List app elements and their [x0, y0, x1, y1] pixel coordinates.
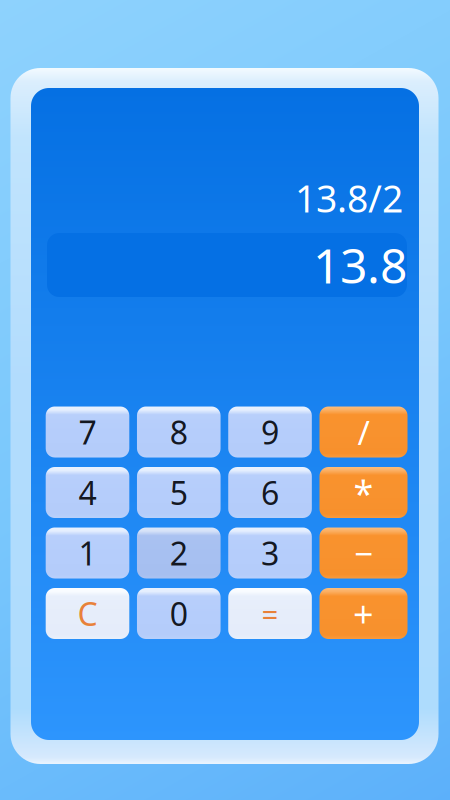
staticText: 1: [78, 532, 96, 574]
staticText: C: [77, 592, 97, 635]
staticText: 0: [170, 592, 188, 635]
button[interactable]: 9: [228, 406, 312, 457]
button[interactable]: C: [46, 588, 129, 639]
staticText: +: [353, 590, 374, 637]
staticText: −: [354, 531, 373, 575]
staticText: 8: [170, 411, 188, 453]
button[interactable]: *: [319, 467, 407, 518]
button[interactable]: −: [319, 527, 407, 578]
staticText: *: [353, 469, 373, 516]
button[interactable]: +: [319, 588, 407, 639]
staticText: 2: [170, 532, 188, 574]
staticText: 3: [261, 532, 279, 574]
staticText: 7: [78, 411, 96, 453]
button[interactable]: 8: [137, 406, 221, 457]
button[interactable]: 5: [137, 467, 221, 518]
staticText: 6: [261, 471, 279, 514]
button[interactable]: 1: [46, 527, 129, 578]
staticText: 13.8: [313, 233, 407, 297]
staticText: 9: [261, 411, 279, 453]
staticText: =: [261, 594, 278, 633]
button[interactable]: 6: [228, 467, 312, 518]
button[interactable]: 7: [46, 406, 129, 457]
button[interactable]: 2: [137, 527, 221, 578]
button[interactable]: =: [228, 588, 312, 639]
staticText: 5: [170, 471, 188, 514]
button[interactable]: 4: [46, 467, 129, 518]
button[interactable]: /: [319, 406, 407, 457]
staticText: 4: [78, 471, 96, 514]
button[interactable]: 0: [137, 588, 221, 639]
staticText: /: [357, 410, 369, 454]
staticText: 13.8/2: [295, 173, 403, 223]
button[interactable]: 3: [228, 527, 312, 578]
